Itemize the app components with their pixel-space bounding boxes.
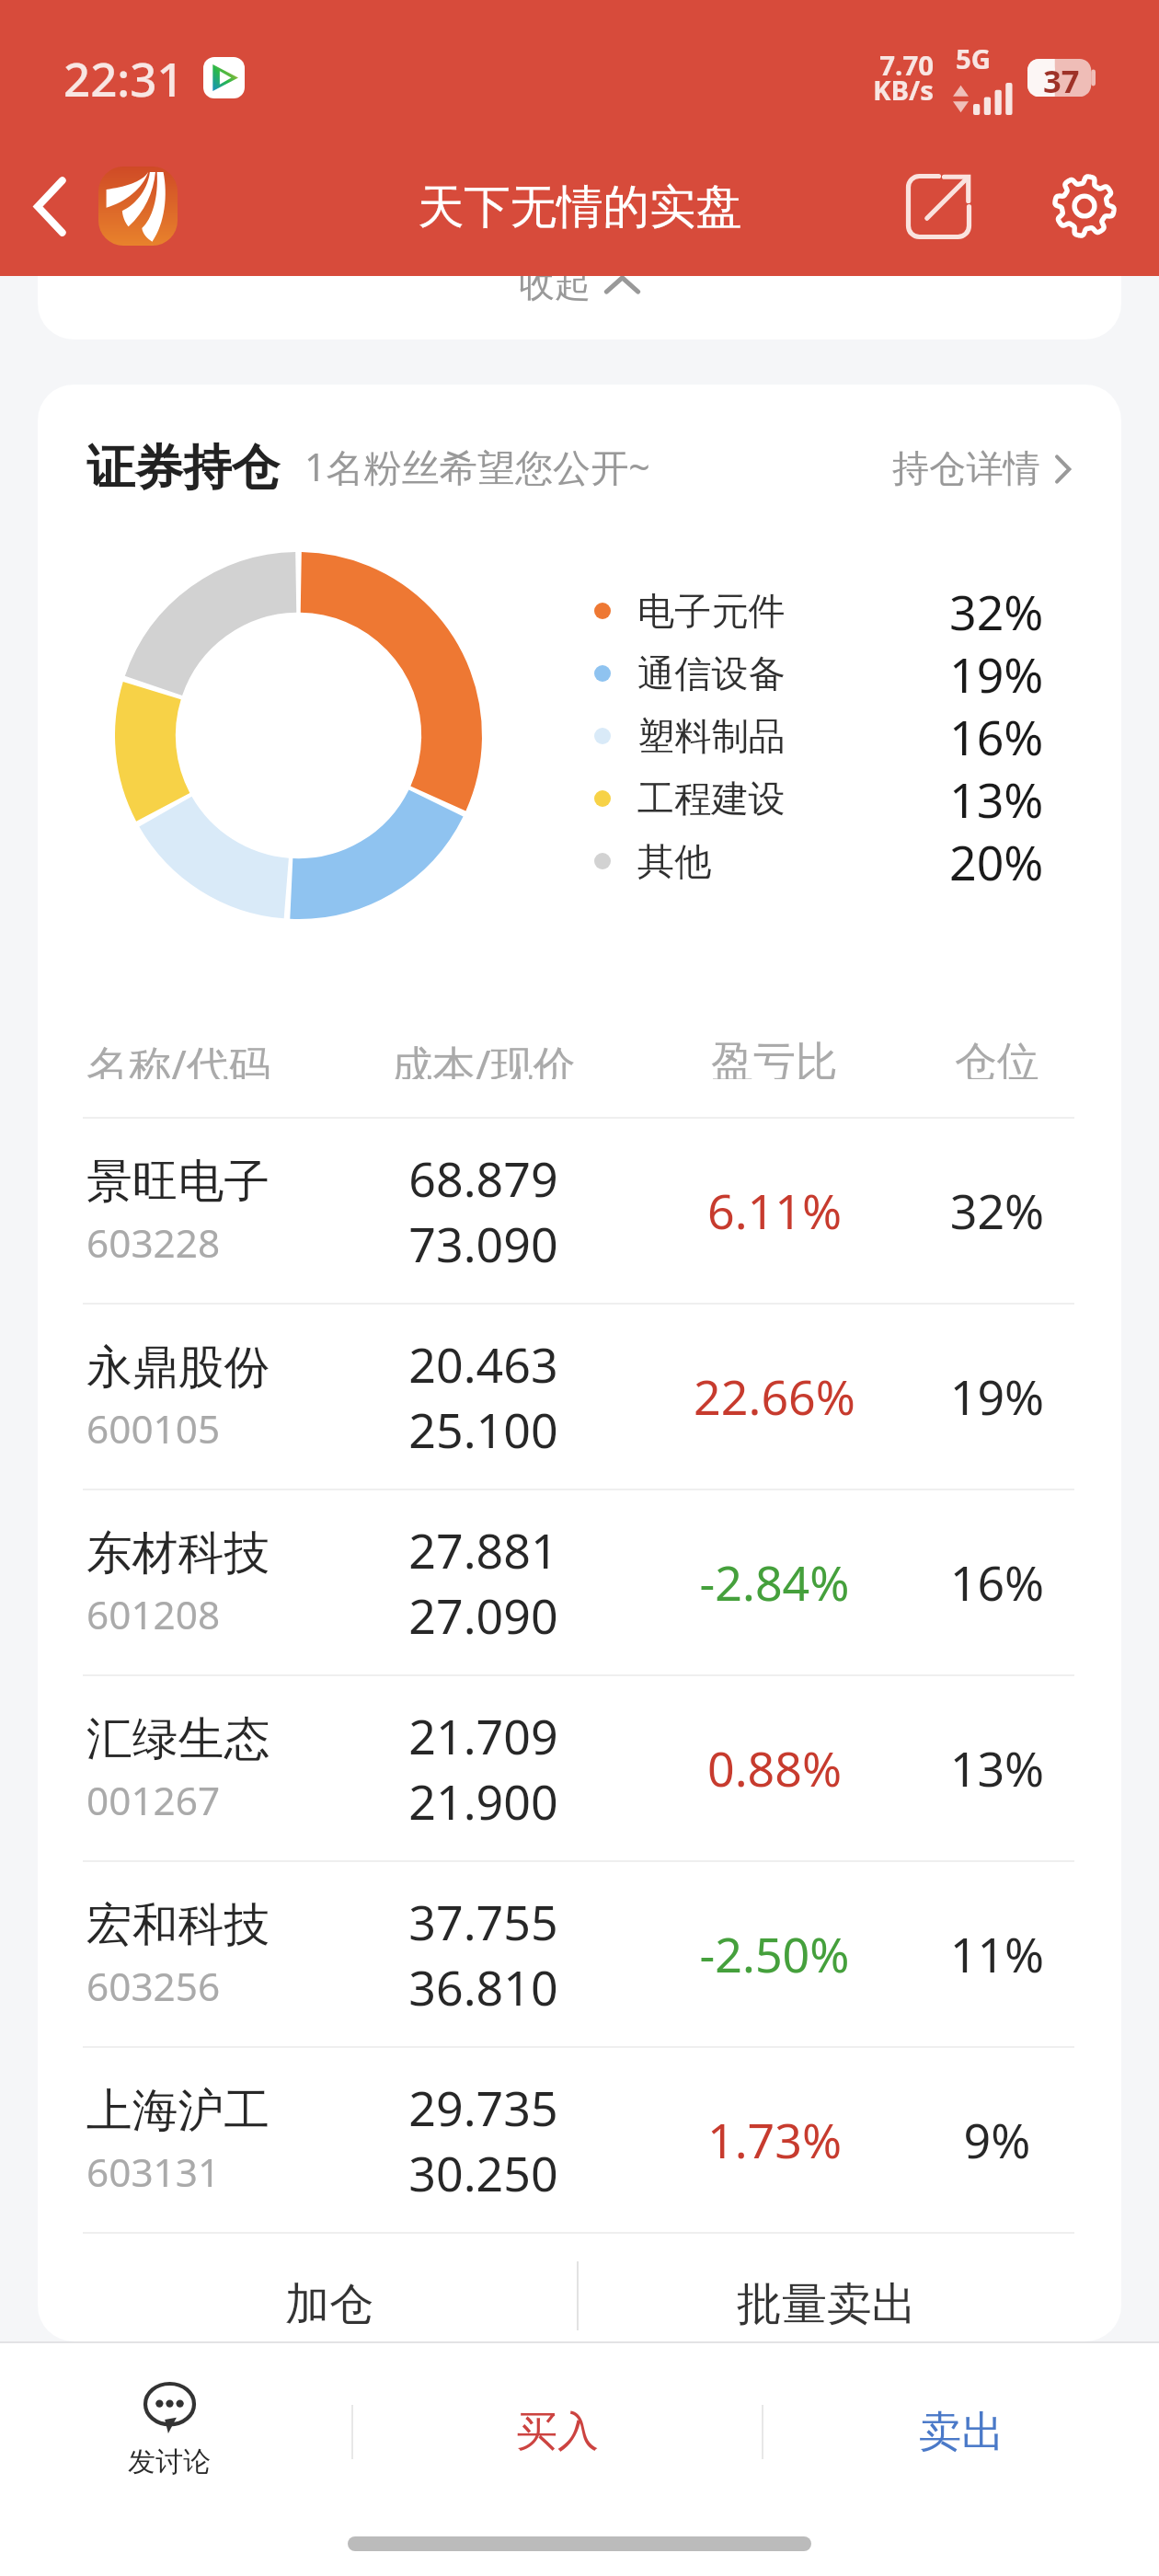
staticText: 汇绿生态 bbox=[86, 1710, 270, 1768]
staticText: 宏和科技 bbox=[86, 1896, 270, 1954]
button[interactable]: 买入 bbox=[353, 2343, 762, 2520]
button[interactable]: 东材科技 bbox=[38, 1490, 1121, 1674]
staticText: 603131 bbox=[86, 2145, 221, 2199]
staticText: 持仓详情 bbox=[892, 445, 1040, 492]
staticText: 盈亏比 bbox=[629, 1036, 920, 1079]
staticText: 证券持仓 bbox=[86, 437, 280, 498]
staticText: 37 bbox=[1043, 59, 1080, 97]
staticText: 5G bbox=[956, 40, 992, 77]
staticText: 22.66% bbox=[629, 1364, 920, 1430]
button[interactable]: 上海沪工 bbox=[38, 2048, 1121, 2232]
staticText: 13% bbox=[949, 767, 1044, 830]
staticText: 收起 bbox=[519, 276, 591, 306]
staticText: 上海沪工 bbox=[86, 2082, 270, 2140]
staticText: 天下无情的实盘 bbox=[418, 178, 742, 236]
staticText: 32% bbox=[949, 580, 1044, 642]
staticText: 32% bbox=[920, 1179, 1074, 1244]
staticText: 1.73% bbox=[629, 2108, 920, 2173]
button[interactable]: Settings bbox=[1010, 136, 1159, 276]
staticText: 景旺电子 bbox=[86, 1153, 270, 1211]
staticText: 工程建设 bbox=[637, 776, 786, 822]
staticText: 东材科技 bbox=[86, 1524, 270, 1582]
staticText: 13% bbox=[920, 1736, 1074, 1801]
button[interactable]: 持仓详情 bbox=[892, 451, 1073, 498]
staticText: 600105 bbox=[86, 1402, 221, 1455]
staticText: 7.70 KB/s bbox=[872, 47, 934, 109]
staticText: 27.881 27.090 bbox=[408, 1518, 558, 1648]
staticText: 16% bbox=[949, 705, 1044, 767]
button[interactable]: 发讨论 bbox=[0, 2343, 351, 2520]
staticText: 批量卖出 bbox=[737, 2276, 917, 2333]
staticText: 6.11% bbox=[629, 1179, 920, 1244]
button[interactable]: 汇绿生态 bbox=[38, 1676, 1121, 1860]
staticText: 9% bbox=[920, 2108, 1074, 2173]
staticText: 其他 bbox=[637, 838, 712, 885]
button[interactable]: Back bbox=[0, 136, 98, 276]
staticText: 1名粉丝希望您公开~ bbox=[304, 441, 650, 492]
button[interactable]: 卖出 bbox=[763, 2343, 1159, 2520]
button[interactable]: 宏和科技 bbox=[38, 1862, 1121, 2046]
staticText: 29.735 30.250 bbox=[408, 2076, 558, 2205]
staticText: 16% bbox=[920, 1550, 1074, 1616]
staticText: 塑料制品 bbox=[637, 713, 786, 760]
staticText: 加仓 bbox=[285, 2276, 374, 2332]
staticText: 名称/代码 bbox=[86, 1036, 337, 1079]
staticText: 永鼎股份 bbox=[86, 1339, 270, 1397]
staticText: 成本/现价 bbox=[337, 1036, 629, 1079]
button[interactable]: App home bbox=[98, 167, 178, 246]
staticText: 发讨论 bbox=[128, 2444, 211, 2479]
staticText: 68.879 73.090 bbox=[408, 1146, 558, 1276]
staticText: 通信设备 bbox=[637, 650, 786, 697]
button[interactable]: 景旺电子 bbox=[38, 1119, 1121, 1303]
staticText: 603256 bbox=[86, 1960, 221, 2013]
staticText: -2.50% bbox=[629, 1922, 920, 1987]
staticText: 20% bbox=[949, 830, 1044, 892]
staticText: 37.755 36.810 bbox=[408, 1890, 558, 2019]
staticText: 仓位 bbox=[920, 1036, 1074, 1079]
staticText: 19% bbox=[920, 1364, 1074, 1430]
staticText: 电子元件 bbox=[637, 588, 786, 635]
staticText: 19% bbox=[949, 642, 1044, 705]
staticText: 603228 bbox=[86, 1216, 221, 1270]
staticText: 11% bbox=[920, 1922, 1074, 1987]
staticText: 22:31 bbox=[63, 46, 184, 109]
staticText: 卖出 bbox=[919, 2405, 1004, 2459]
button[interactable]: 永鼎股份 bbox=[38, 1305, 1121, 1489]
staticText: 21.709 21.900 bbox=[408, 1704, 558, 1834]
staticText: 买入 bbox=[516, 2406, 599, 2458]
staticText: 20.463 25.100 bbox=[408, 1332, 558, 1462]
staticText: -2.84% bbox=[629, 1550, 920, 1616]
button[interactable]: 收起 bbox=[38, 276, 1121, 339]
staticText: 0.88% bbox=[629, 1736, 920, 1801]
button[interactable]: 加仓 bbox=[82, 2234, 577, 2341]
button[interactable]: 批量卖出 bbox=[579, 2234, 1074, 2341]
staticText: 001267 bbox=[86, 1774, 221, 1827]
button[interactable]: Share bbox=[866, 136, 1010, 276]
staticText: 601208 bbox=[86, 1588, 221, 1641]
